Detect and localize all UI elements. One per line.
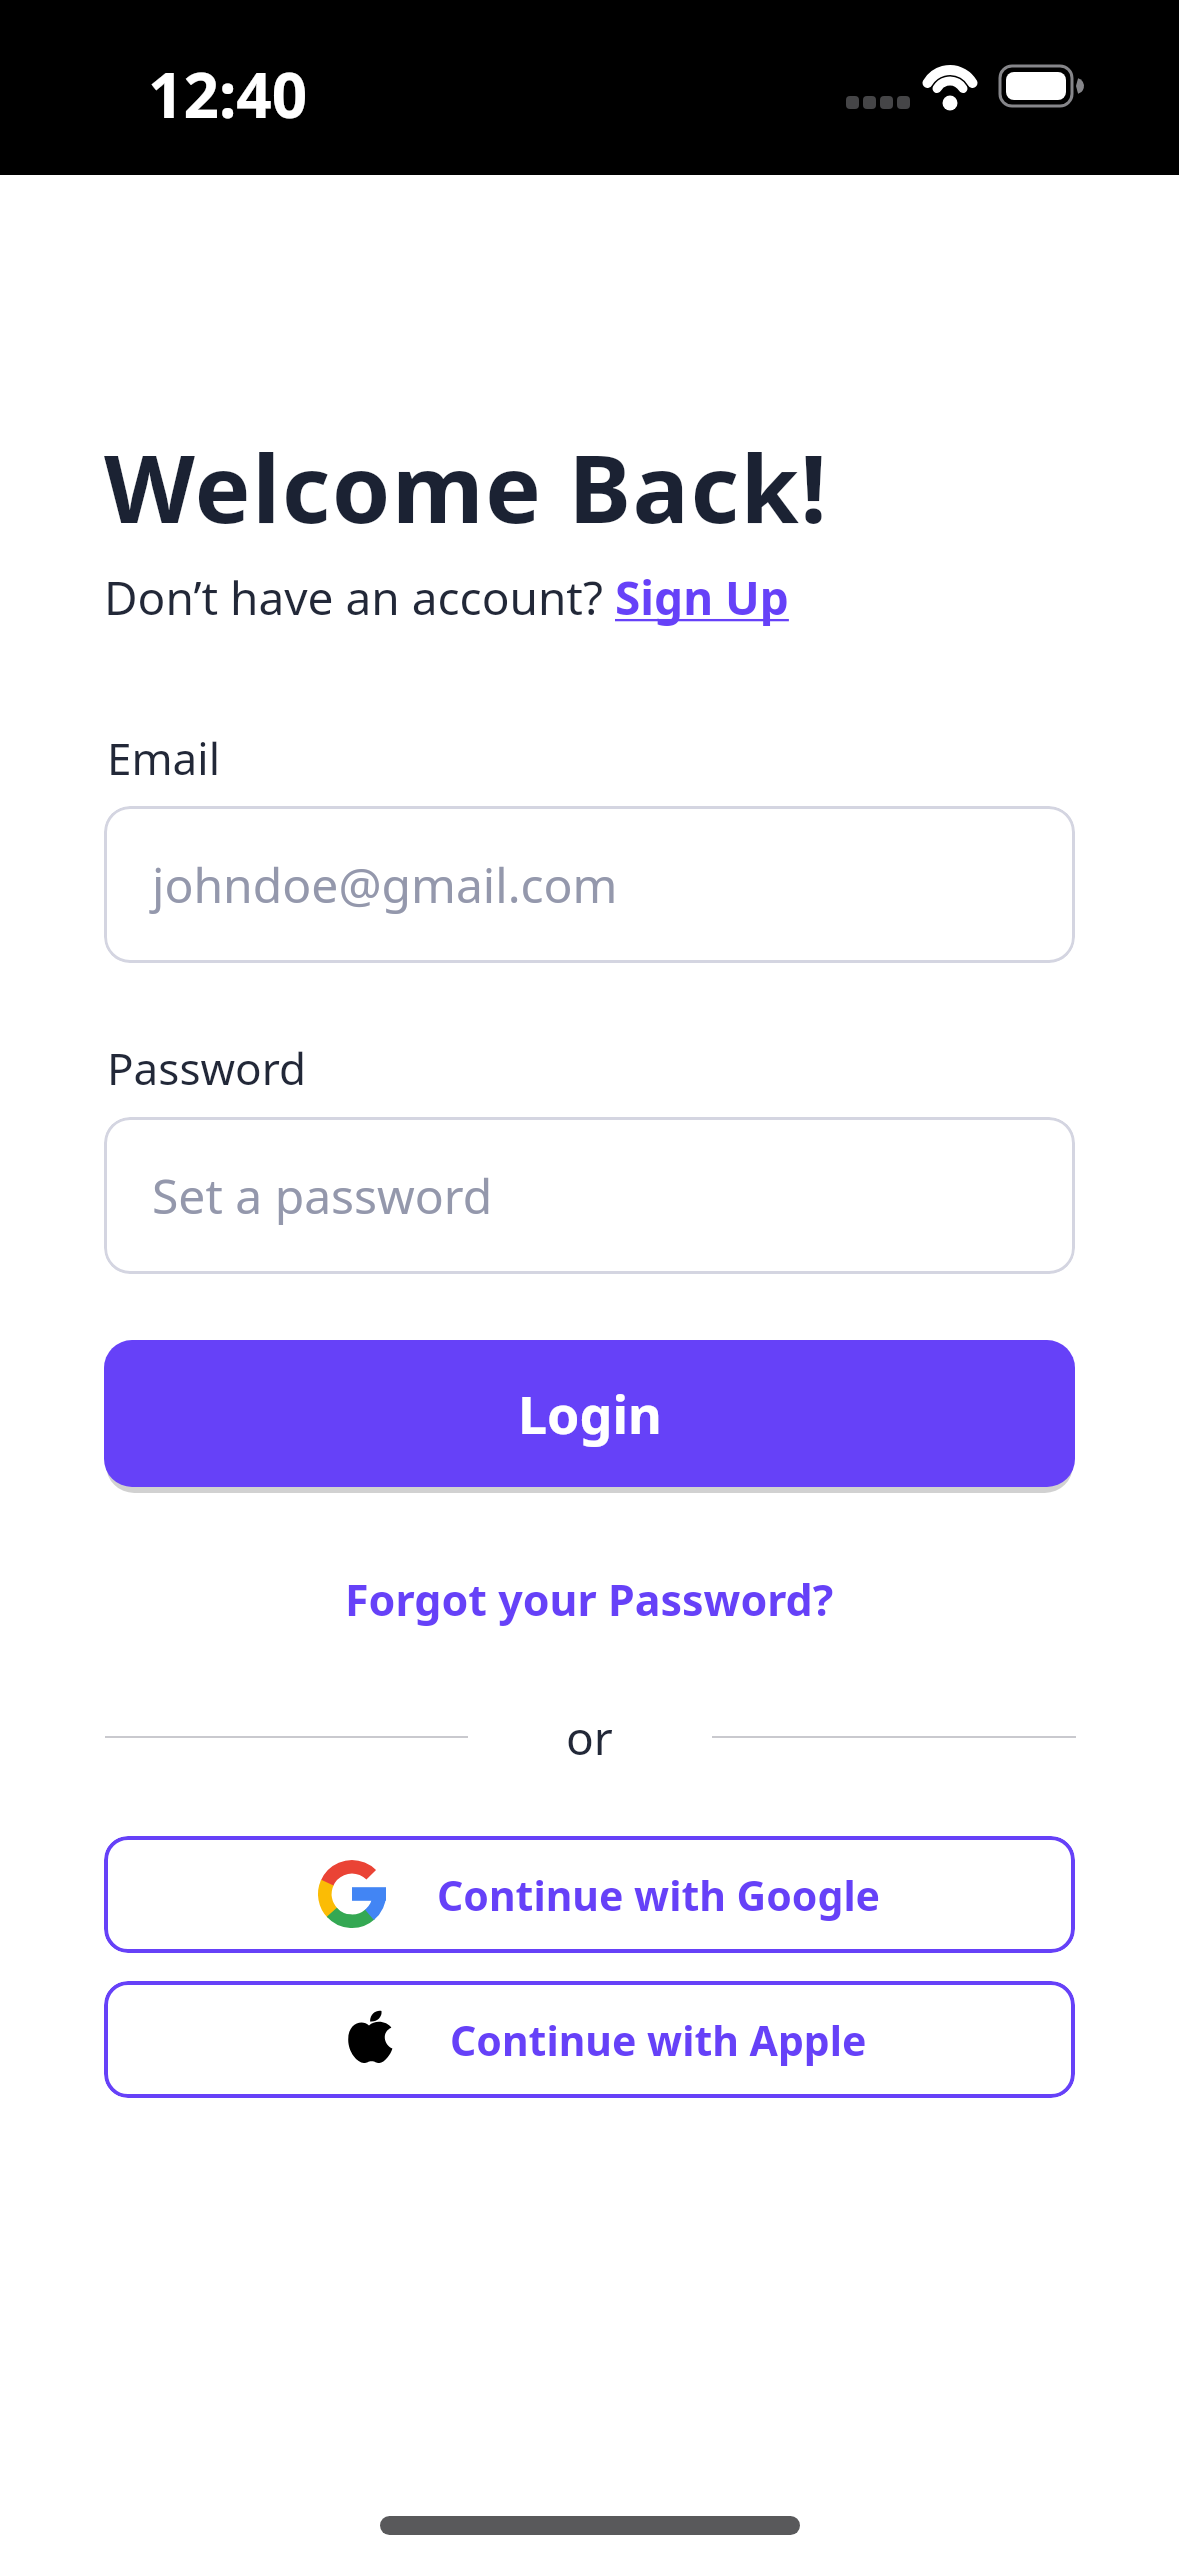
- staticText: Login: [518, 1378, 662, 1449]
- staticText: Welcome Back!: [104, 423, 829, 551]
- staticText: Email: [107, 728, 220, 788]
- button[interactable]: Login: [104, 1340, 1075, 1487]
- button[interactable]: Continue with Google: [104, 1836, 1075, 1953]
- button[interactable]: Set a password: [104, 1117, 1075, 1274]
- button[interactable]: Continue with Apple: [104, 1981, 1075, 2098]
- button[interactable]: Sign Up: [615, 566, 789, 629]
- staticText: Continue with Google: [437, 1867, 881, 1923]
- button[interactable]: Forgot your Password?: [345, 1570, 834, 1629]
- staticText: 12:40: [148, 52, 308, 136]
- button[interactable]: johndoe@gmail.com: [104, 806, 1075, 963]
- staticText: Set a password: [152, 1163, 493, 1228]
- staticText: Password: [107, 1038, 307, 1098]
- staticText: johndoe@gmail.com: [152, 852, 618, 917]
- staticText: Don’t have an account?: [104, 566, 615, 629]
- staticText: or: [566, 1706, 613, 1769]
- staticText: Continue with Apple: [450, 2012, 867, 2068]
